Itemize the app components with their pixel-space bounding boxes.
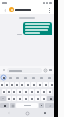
button[interactable]: [12, 89, 16, 94]
button[interactable]: Shift: [0, 96, 6, 101]
button[interactable]: Emoji: [43, 68, 47, 72]
button[interactable]: [7, 68, 42, 73]
button[interactable]: [35, 96, 40, 101]
button[interactable]: Emoji keyboard: [10, 103, 15, 108]
button[interactable]: [37, 76, 45, 80]
button[interactable]: [7, 89, 11, 94]
button[interactable]: [43, 82, 48, 87]
button[interactable]: Space: [16, 103, 38, 108]
button[interactable]: More options: [46, 7, 52, 13]
button[interactable]: [0, 103, 9, 108]
button[interactable]: [7, 96, 11, 101]
button[interactable]: Assistant: [1, 75, 6, 80]
button[interactable]: Backspace: [47, 96, 54, 101]
button[interactable]: [47, 89, 52, 94]
button[interactable]: [41, 96, 46, 101]
button[interactable]: [37, 82, 42, 87]
button[interactable]: Send: [48, 68, 52, 72]
button[interactable]: Home: [18, 109, 36, 117]
button[interactable]: [45, 76, 53, 80]
button[interactable]: Recent apps: [36, 109, 54, 117]
button[interactable]: [29, 89, 34, 94]
button[interactable]: Back: [2, 7, 8, 13]
button[interactable]: [10, 82, 14, 87]
button[interactable]: [5, 82, 9, 87]
button[interactable]: [41, 89, 46, 94]
button[interactable]: [7, 76, 14, 80]
button[interactable]: [12, 96, 16, 101]
button[interactable]: [21, 76, 29, 80]
button[interactable]: [23, 22, 52, 35]
button[interactable]: [31, 82, 36, 87]
button[interactable]: [0, 82, 4, 87]
button[interactable]: [29, 76, 37, 80]
button[interactable]: [25, 82, 30, 87]
button[interactable]: [49, 82, 54, 87]
button[interactable]: [39, 103, 44, 108]
button[interactable]: [14, 76, 21, 80]
button[interactable]: [23, 96, 28, 101]
button[interactable]: [35, 89, 40, 94]
button[interactable]: [20, 82, 24, 87]
button[interactable]: [17, 96, 22, 101]
button[interactable]: [15, 82, 19, 87]
button[interactable]: [23, 89, 28, 94]
button[interactable]: [2, 89, 6, 94]
button[interactable]: Enter: [45, 103, 54, 108]
button[interactable]: Attach: [2, 68, 6, 72]
button[interactable]: [29, 96, 34, 101]
button[interactable]: [17, 89, 22, 94]
